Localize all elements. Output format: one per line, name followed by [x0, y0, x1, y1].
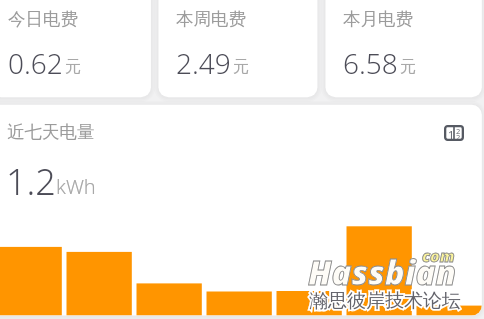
staticText: 元 [233, 57, 249, 77]
staticText: 2.49 [176, 44, 231, 82]
button[interactable]: 本月电费 [326, 0, 484, 97]
staticText: 6.58 [343, 44, 398, 82]
button[interactable]: 今日电费 [0, 0, 150, 97]
staticText: 今日电费 [8, 8, 78, 30]
staticText: Hassbian [308, 250, 457, 295]
staticText: 2 [456, 132, 461, 142]
staticText: com [422, 245, 455, 267]
button[interactable]: 近七天电量 [0, 105, 479, 316]
staticText: com [422, 245, 455, 267]
button[interactable]: Switch chart unit [444, 125, 464, 141]
staticText: 元 [400, 57, 416, 77]
staticText: 元 [65, 57, 81, 77]
staticText: Hassbian [308, 250, 457, 295]
staticText: 2 [456, 126, 461, 136]
button[interactable]: 本周电费 [159, 0, 318, 97]
staticText: kWh [56, 173, 96, 200]
staticText: 0.62 [8, 44, 63, 82]
staticText: 瀚思彼岸技术论坛 [309, 289, 461, 313]
staticText: 1.2 [6, 157, 56, 206]
staticText: 瀚思彼岸技术论坛 [309, 289, 461, 313]
staticText: 近七天电量 [7, 121, 95, 143]
staticText: 本月电费 [343, 8, 413, 30]
staticText: 1 [448, 127, 455, 142]
staticText: 本周电费 [176, 8, 246, 30]
